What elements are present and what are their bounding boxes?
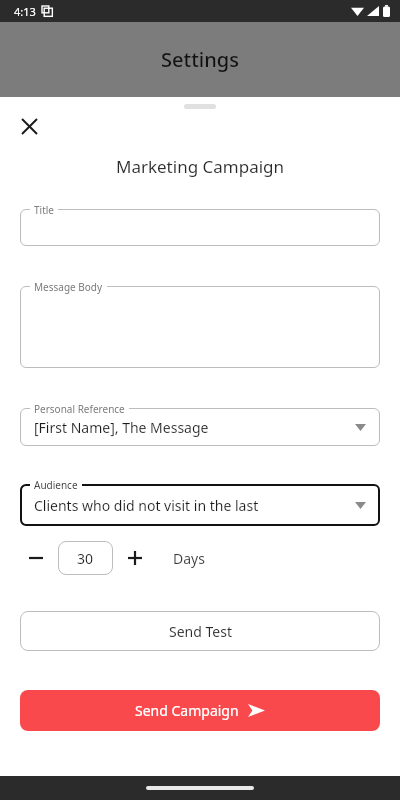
staticText: 30 [77, 549, 94, 568]
staticText: Audience [34, 478, 78, 492]
button[interactable]: Send Test [20, 611, 380, 651]
staticText: Title [34, 203, 54, 217]
button[interactable]: Send Campaign [20, 690, 380, 731]
button[interactable]: Increase days [119, 542, 151, 574]
button[interactable]: 30 [58, 541, 113, 575]
staticText: Settings [161, 46, 239, 73]
staticText: Clients who did not visit in the last [34, 496, 259, 515]
button[interactable]: Message Body [20, 286, 380, 368]
button[interactable]: Close [16, 113, 42, 139]
staticText: Send Test [169, 622, 232, 641]
staticText: Days [173, 549, 205, 568]
button[interactable]: Title [20, 209, 380, 246]
staticText: Send Campaign [135, 701, 239, 720]
button[interactable]: Decrease days [20, 542, 52, 574]
staticText: Message Body [34, 280, 103, 294]
button[interactable]: Audience [20, 484, 380, 526]
staticText: Personal Reference [34, 402, 125, 416]
staticText: 4:13 [14, 4, 36, 19]
button[interactable]: Personal Reference [20, 408, 380, 446]
staticText: Marketing Campaign [0, 155, 400, 178]
staticText: [First Name], The Message [34, 418, 209, 437]
